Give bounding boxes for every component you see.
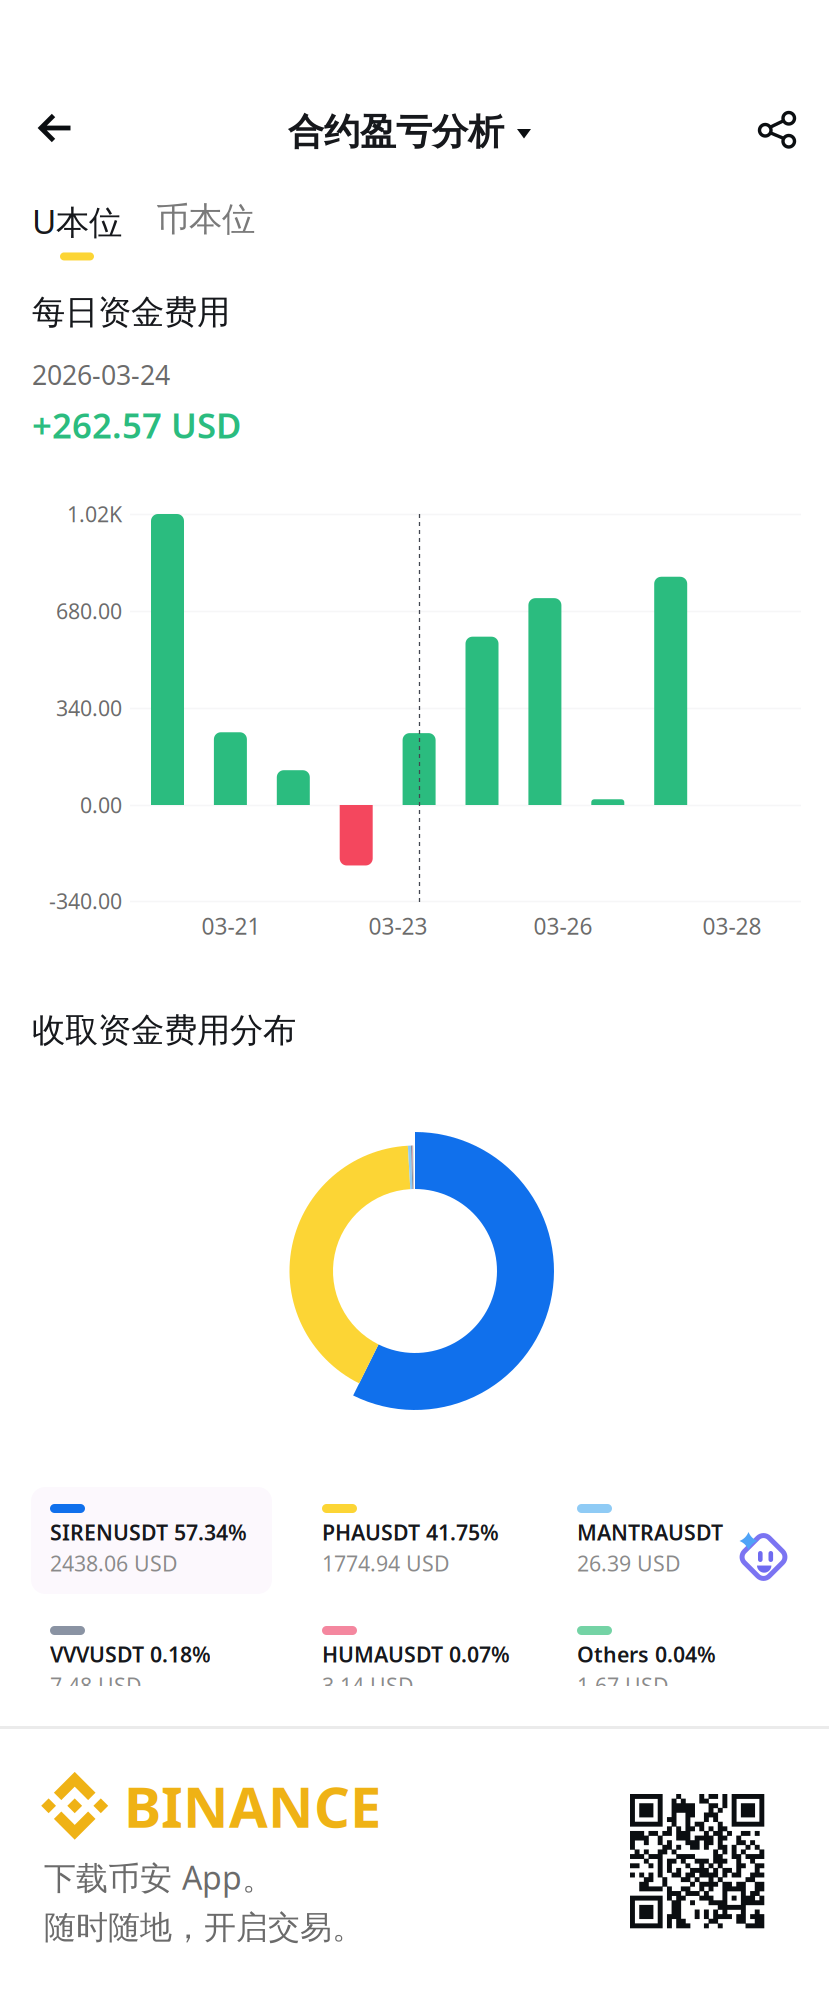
staticText: 26.39 USD: [577, 1549, 681, 1577]
staticText: 1.67 USD: [577, 1671, 669, 1699]
button[interactable]: 币本位: [156, 199, 276, 257]
staticText: MANTRAUSDT: [577, 1518, 723, 1546]
button[interactable]: AI assistant: [730, 1532, 788, 1590]
staticText: 随时随地，开启交易。: [44, 1908, 364, 1947]
staticText: 币本位: [156, 199, 255, 240]
staticText: 下载币安 App。: [44, 1856, 274, 1898]
staticText: 0.00: [80, 791, 122, 819]
staticText: HUMAUSDT 0.07%: [322, 1640, 510, 1668]
staticText: SIRENUSDT 57.34%: [50, 1518, 247, 1546]
staticText: 680.00: [56, 597, 122, 625]
staticText: +262.57 USD: [32, 402, 241, 448]
button[interactable]: VVVUSDT 0.18%: [31, 1609, 272, 1716]
staticText: 收取资金费用分布: [32, 1010, 296, 1051]
staticText: 合约盈亏分析: [288, 110, 504, 154]
staticText: BINANCE: [124, 1769, 381, 1843]
button[interactable]: Back: [22, 98, 88, 158]
staticText: 每日资金费用: [32, 292, 230, 333]
staticText: VVVUSDT 0.18%: [50, 1640, 211, 1668]
button[interactable]: HUMAUSDT 0.07%: [303, 1609, 544, 1716]
staticText: 1774.94 USD: [322, 1549, 450, 1577]
staticText: 03-26: [533, 911, 592, 941]
staticText: 2026-03-24: [32, 357, 170, 392]
staticText: U本位: [32, 199, 122, 243]
staticText: 1.02K: [67, 500, 122, 528]
staticText: 2438.06 USD: [50, 1549, 178, 1577]
button[interactable]: 合约盈亏分析: [278, 104, 539, 160]
staticText: 03-28: [702, 911, 761, 941]
staticText: 03-23: [368, 911, 427, 941]
button[interactable]: Others 0.04%: [558, 1609, 799, 1716]
staticText: -340.00: [49, 887, 122, 915]
button[interactable]: SIRENUSDT 57.34%: [31, 1487, 272, 1594]
button[interactable]: Share: [745, 99, 809, 161]
staticText: PHAUSDT 41.75%: [322, 1518, 499, 1546]
staticText: 03-21: [201, 911, 260, 941]
staticText: 7.48 USD: [50, 1671, 142, 1699]
staticText: Others 0.04%: [577, 1640, 716, 1668]
button[interactable]: MANTRAUSDT: [558, 1487, 799, 1594]
staticText: 340.00: [56, 694, 122, 722]
button[interactable]: U本位: [32, 199, 122, 260]
button[interactable]: PHAUSDT 41.75%: [303, 1487, 544, 1594]
staticText: 3.14 USD: [322, 1671, 414, 1699]
